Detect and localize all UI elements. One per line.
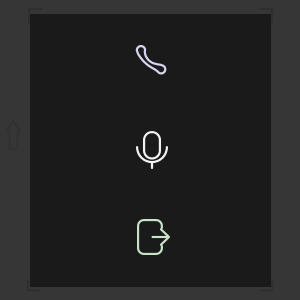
button[interactable]: Call	[137, 47, 165, 73]
button[interactable]: Sign out	[138, 220, 169, 254]
button[interactable]: Microphone	[137, 132, 167, 168]
